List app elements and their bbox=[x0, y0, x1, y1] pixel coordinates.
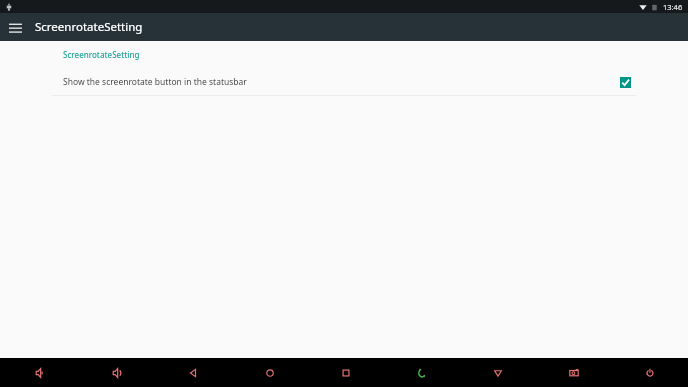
button[interactable]: Show the screenrotate button in the stat… bbox=[0, 69, 688, 96]
staticText: ScreenrotateSetting bbox=[63, 49, 140, 60]
button[interactable]: Screenshot bbox=[536, 358, 612, 387]
button[interactable]: Recents bbox=[308, 358, 384, 387]
button[interactable]: Hide navigation bar bbox=[460, 358, 536, 387]
button[interactable]: Back bbox=[154, 358, 231, 387]
button[interactable]: Home bbox=[231, 358, 308, 387]
button[interactable]: Volume up bbox=[77, 358, 154, 387]
button[interactable]: Toggle screenrotate button bbox=[614, 71, 636, 93]
staticText: ScreenrotateSetting bbox=[35, 19, 143, 35]
button[interactable]: Menu bbox=[4, 16, 26, 38]
staticText: Show the screenrotate button in the stat… bbox=[63, 76, 614, 88]
button[interactable]: Volume down bbox=[0, 358, 77, 387]
button[interactable]: Power bbox=[612, 358, 688, 387]
staticText: 13:46 bbox=[663, 2, 683, 12]
button[interactable]: Rotate screen bbox=[384, 358, 460, 387]
